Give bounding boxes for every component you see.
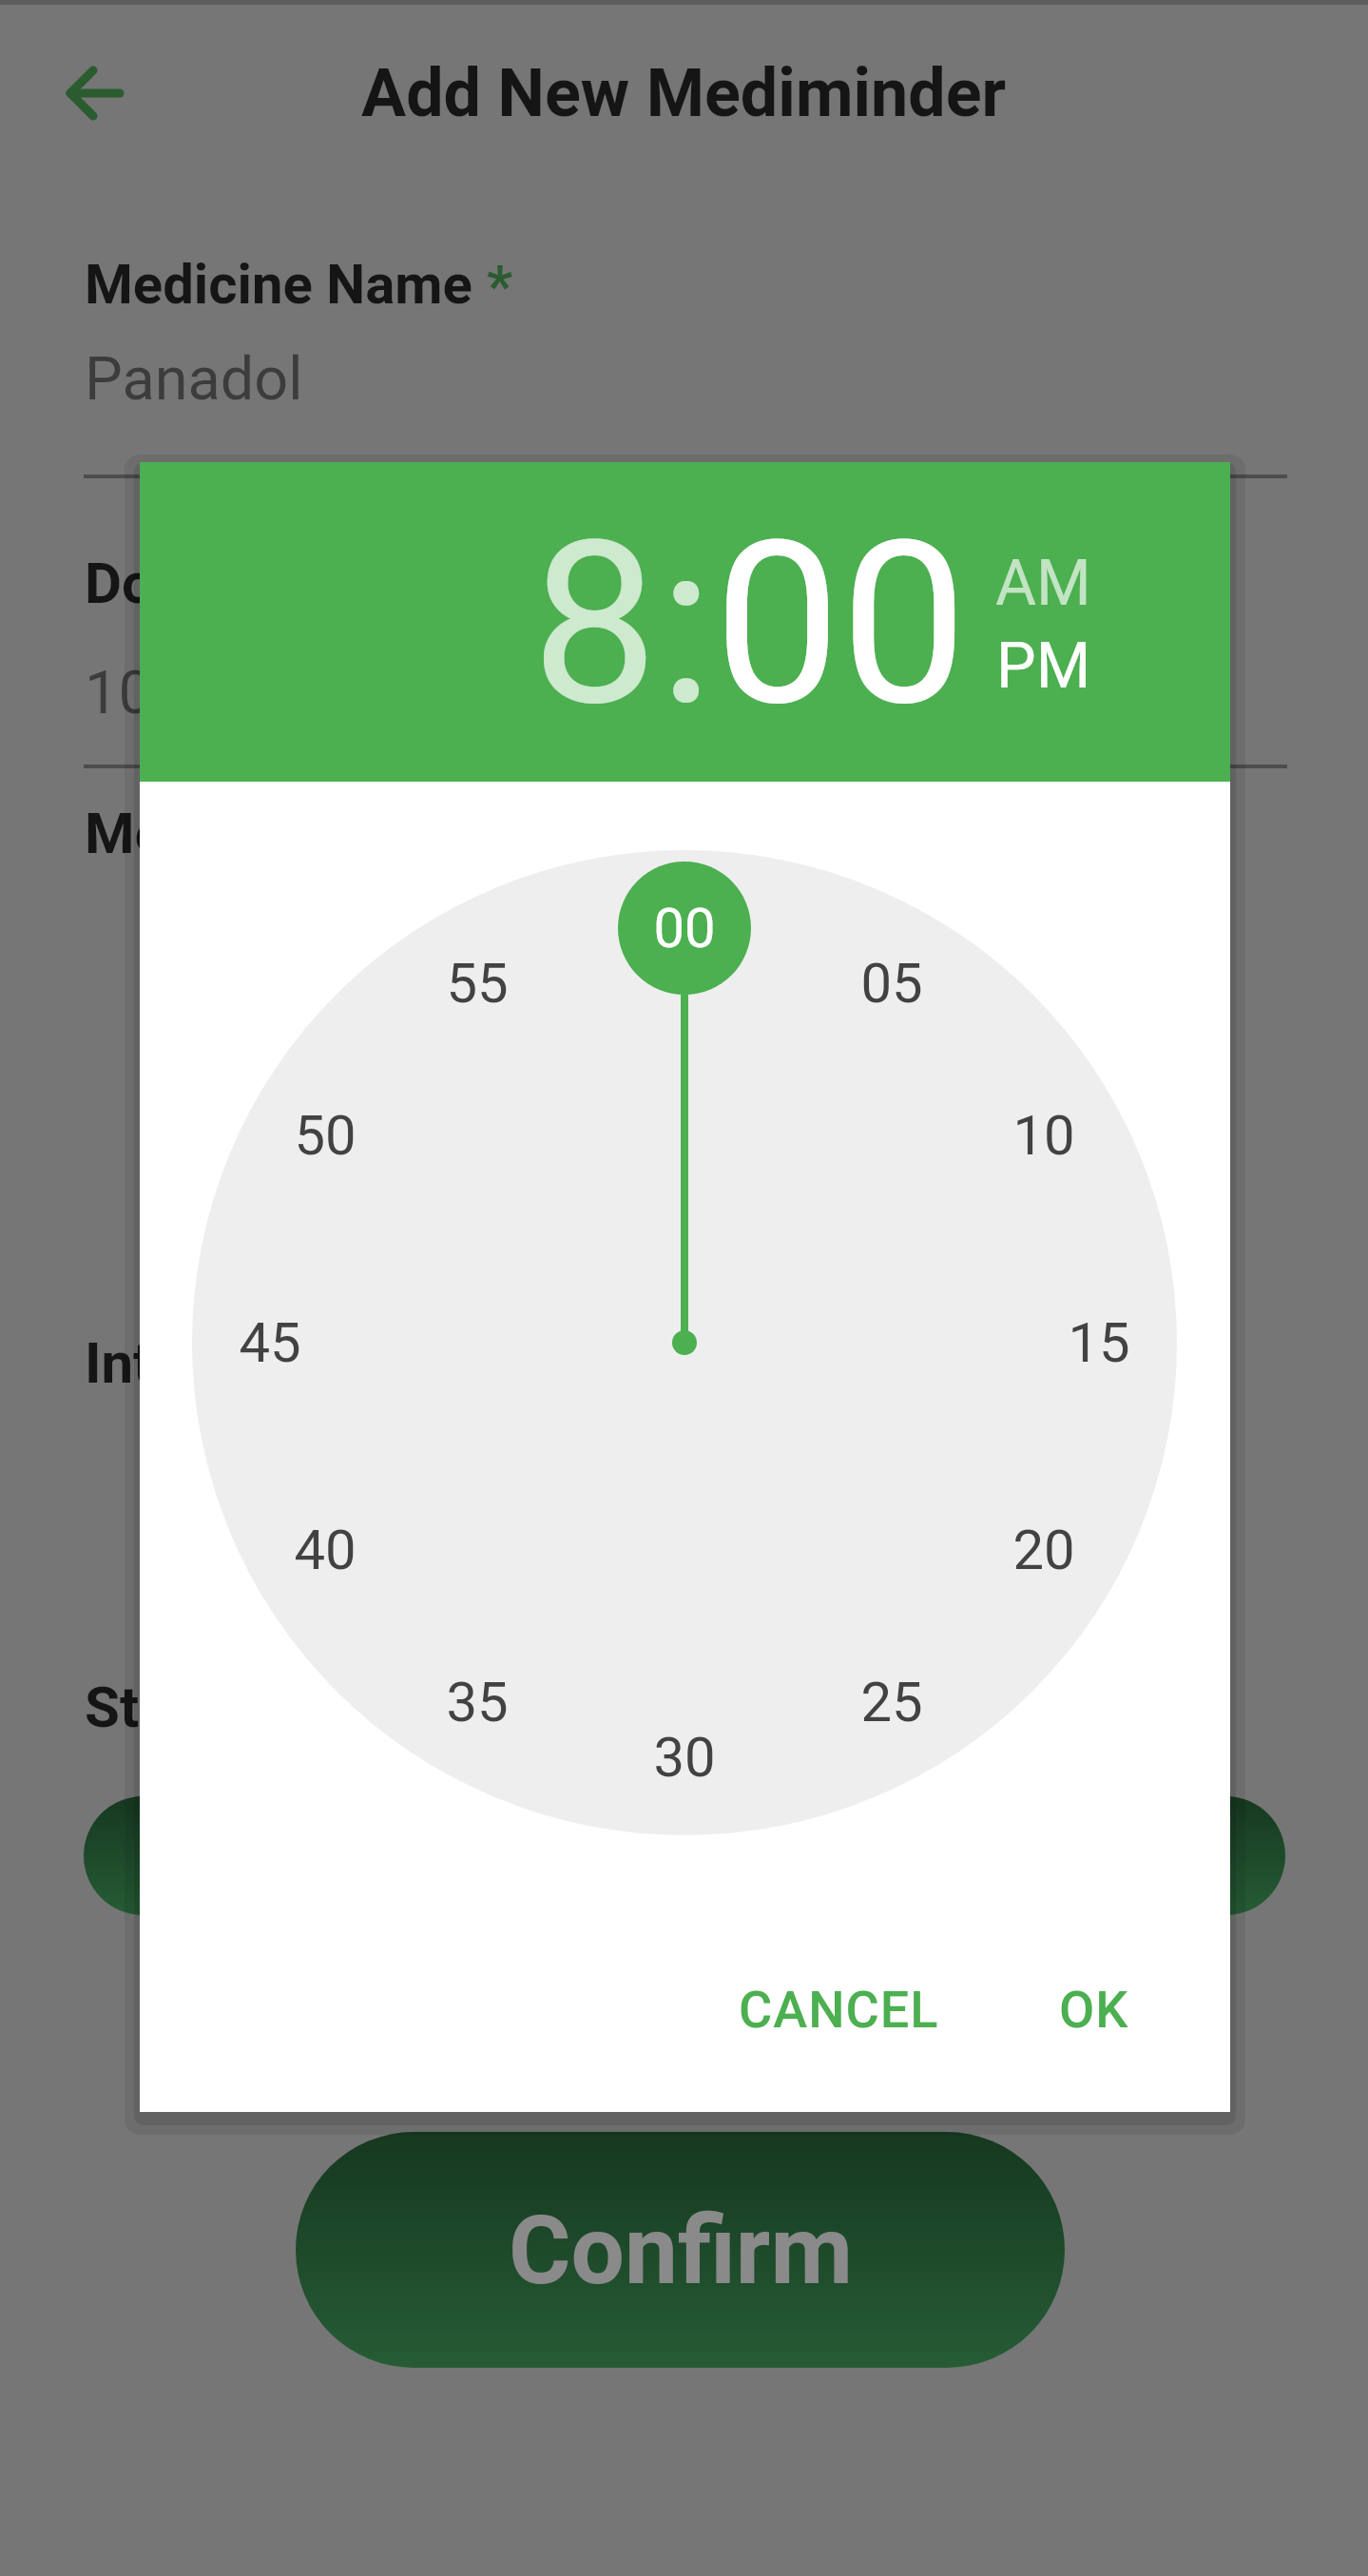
button[interactable]: 50: [263, 1093, 387, 1178]
button[interactable]: AM: [995, 547, 1091, 620]
button[interactable]: OK: [1018, 1957, 1170, 2062]
staticText: 00: [653, 896, 716, 960]
button[interactable]: 10: [982, 1093, 1106, 1178]
button[interactable]: 40: [263, 1507, 387, 1593]
staticText: 100mg: [85, 658, 272, 728]
staticText: 15: [1068, 1310, 1130, 1375]
staticText: Medicine Name: [85, 252, 487, 317]
button[interactable]: [84, 1796, 1285, 1915]
staticText: 50: [294, 1103, 356, 1168]
staticText: Interval: [85, 1329, 279, 1396]
button[interactable]: Confirm: [296, 2132, 1065, 2368]
button[interactable]: 45: [208, 1300, 332, 1385]
button[interactable]: 00: [623, 885, 746, 971]
staticText: Panadol: [85, 344, 303, 415]
staticText: 45: [239, 1310, 301, 1375]
staticText: Dosage: [85, 550, 278, 616]
staticText: Confirm: [509, 2195, 853, 2306]
staticText: Mediminder Type: [85, 800, 530, 866]
button[interactable]: 15: [1037, 1300, 1161, 1385]
staticText: :: [659, 493, 714, 757]
button[interactable]: 55: [415, 940, 539, 1026]
staticText: 00: [714, 493, 968, 757]
button[interactable]: PM: [996, 629, 1091, 703]
button[interactable]: 20: [982, 1507, 1106, 1593]
staticText: 8: [531, 493, 659, 757]
staticText: 10: [1012, 1103, 1075, 1168]
button[interactable]: 05: [830, 940, 954, 1026]
staticText: 20: [1012, 1518, 1075, 1582]
button[interactable]: 25: [830, 1659, 954, 1745]
staticText: Starting Date: [85, 1674, 423, 1740]
staticText: 25: [860, 1670, 923, 1734]
button[interactable]: 30: [623, 1714, 746, 1800]
button[interactable]: CANCEL: [715, 1957, 962, 2062]
staticText: 40: [294, 1518, 356, 1582]
staticText: OK: [1059, 1980, 1129, 2040]
staticText: *: [487, 252, 513, 319]
staticText: 55: [446, 951, 509, 1016]
staticText: CANCEL: [739, 1980, 939, 2040]
button[interactable]: [57, 57, 133, 133]
staticText: 05: [860, 951, 923, 1016]
staticText: Add New Mediminder: [361, 54, 1007, 132]
staticText: 30: [653, 1725, 716, 1790]
button[interactable]: 35: [415, 1659, 539, 1745]
staticText: 35: [446, 1670, 509, 1734]
